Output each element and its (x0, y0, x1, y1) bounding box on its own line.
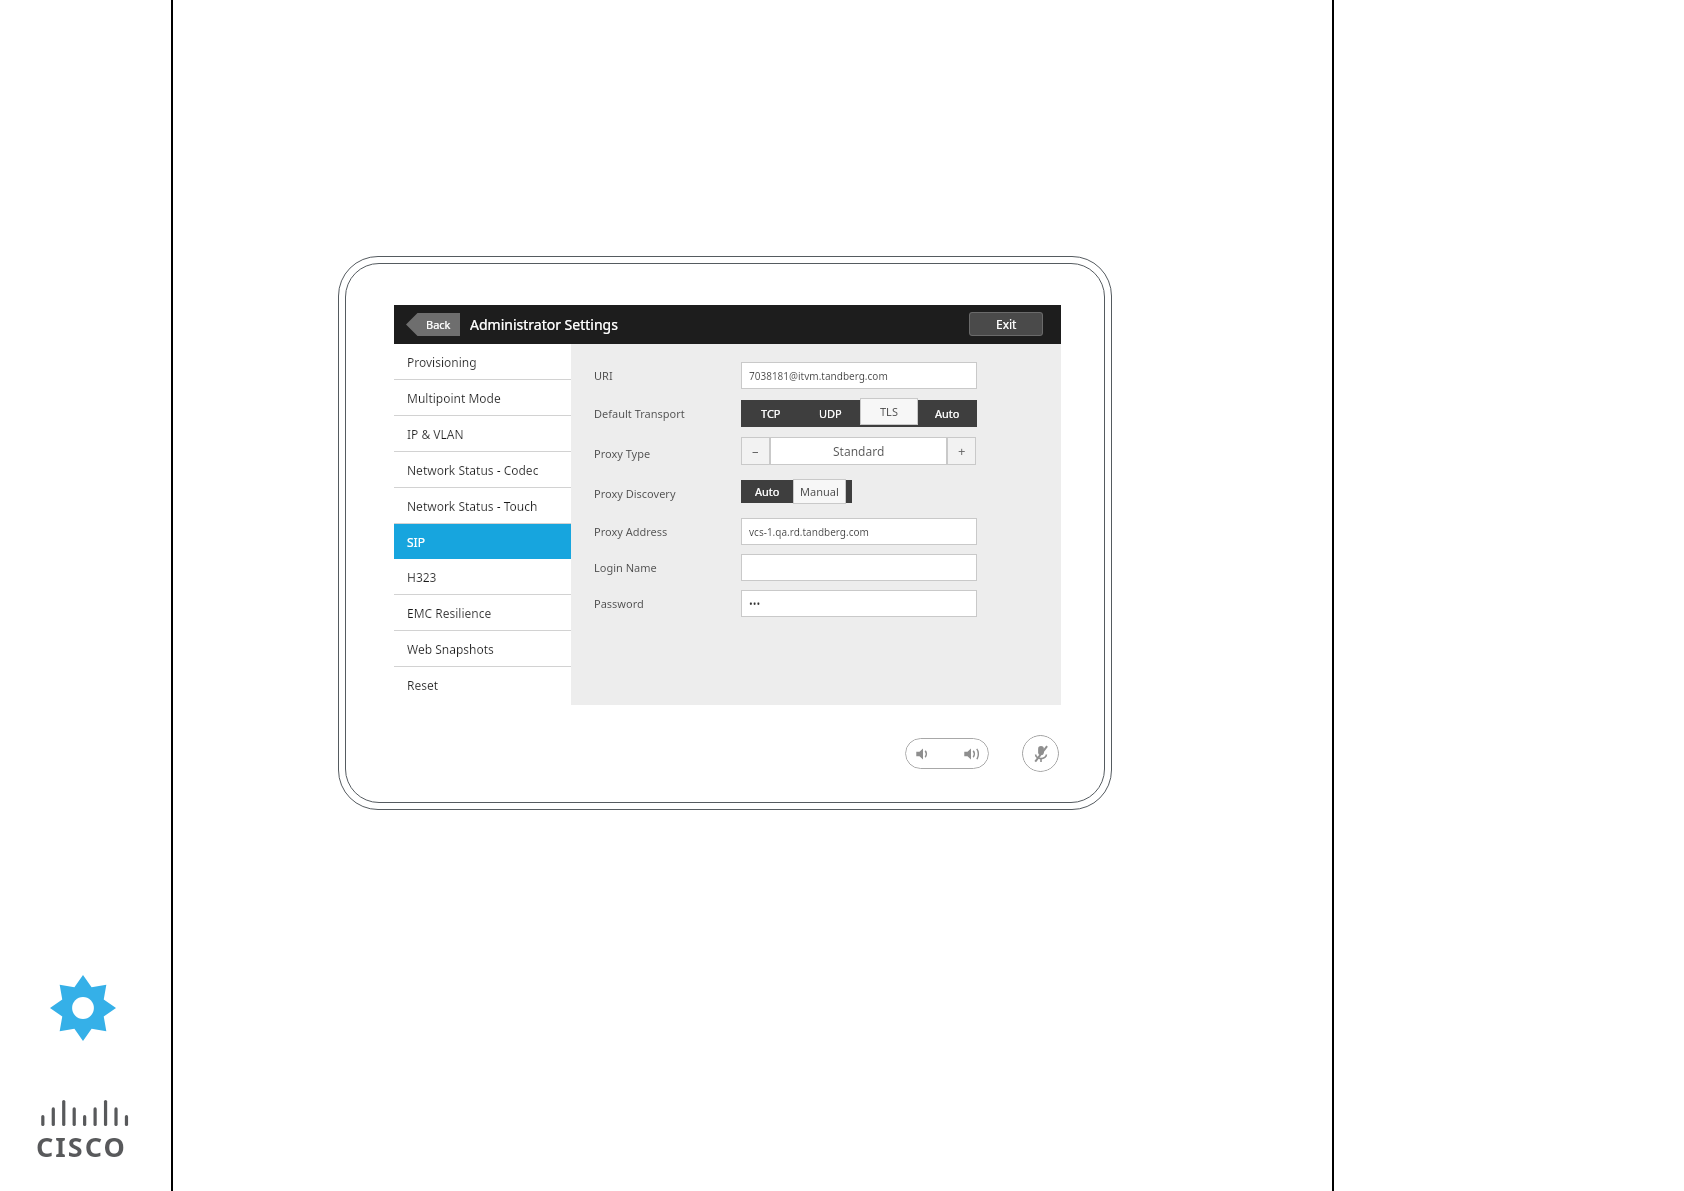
staticText: + (958, 442, 966, 460)
button[interactable]: Web Snapshots (394, 631, 571, 666)
staticText: 7038181@itvm.tandberg.com (749, 369, 888, 383)
button[interactable]: UDP (801, 400, 860, 427)
staticText: TCP (761, 406, 781, 421)
staticText: vcs-1.qa.rd.tandberg.com (749, 525, 869, 539)
staticText: Proxy Address (594, 524, 668, 539)
button[interactable]: TLS (860, 398, 918, 425)
button[interactable]: Multipoint Mode (394, 380, 571, 415)
staticText: H323 (407, 569, 437, 585)
button[interactable]: Exit (969, 312, 1043, 336)
button[interactable]: Network Status - Codec (394, 452, 571, 487)
staticText: Network Status - Codec (407, 462, 539, 478)
button[interactable]: Manual (793, 479, 846, 504)
staticText: – (752, 442, 759, 460)
button[interactable]: Mute microphone (1022, 735, 1059, 772)
staticText: TLS (880, 404, 898, 419)
staticText: Multipoint Mode (407, 390, 501, 406)
button[interactable]: Standard (770, 437, 947, 465)
button[interactable]: TCP (741, 400, 801, 427)
button[interactable]: Auto (741, 480, 793, 503)
staticText: Reset (407, 677, 439, 693)
button[interactable]: Reset (394, 667, 571, 702)
staticText: SIP (407, 534, 425, 550)
staticText: Back (426, 317, 451, 332)
button[interactable]: Provisioning (394, 344, 571, 379)
staticText: Standard (833, 443, 885, 459)
staticText: URI (594, 368, 613, 383)
staticText: Auto (935, 406, 960, 421)
button[interactable]: IP & VLAN (394, 416, 571, 451)
staticText: Exit (996, 316, 1017, 332)
button[interactable]: Volume down (915, 746, 931, 762)
staticText: IP & VLAN (407, 426, 464, 442)
button[interactable]: H323 (394, 559, 571, 594)
button[interactable]: Decrease (741, 437, 770, 465)
staticText: UDP (819, 406, 842, 421)
button[interactable]: Increase (947, 437, 976, 465)
staticText: Network Status - Touch (407, 498, 538, 514)
staticText: Manual (800, 484, 839, 499)
button[interactable]: SIP (394, 524, 571, 559)
staticText: Proxy Discovery (594, 486, 676, 501)
button[interactable]: ••• (741, 590, 977, 617)
staticText: Administrator Settings (470, 315, 618, 334)
staticText: Web Snapshots (407, 641, 494, 657)
button[interactable]: EMC Resilience (394, 595, 571, 630)
staticText: Login Name (594, 560, 657, 575)
staticText: Default Transport (594, 406, 685, 421)
button[interactable]: vcs-1.qa.rd.tandberg.com (741, 518, 977, 545)
button[interactable] (741, 554, 977, 581)
staticText: Proxy Type (594, 446, 651, 461)
staticText: Password (594, 596, 644, 611)
button[interactable]: 7038181@itvm.tandberg.com (741, 362, 977, 389)
button[interactable]: Network Status - Touch (394, 488, 571, 523)
button[interactable]: Auto (918, 400, 977, 427)
staticText: EMC Resilience (407, 605, 492, 621)
button[interactable]: Back (406, 313, 460, 336)
button[interactable]: Volume up (963, 746, 979, 762)
staticText: Provisioning (407, 354, 477, 370)
staticText: CISCO (36, 1128, 127, 1165)
staticText: ••• (749, 597, 761, 611)
staticText: Auto (755, 484, 780, 499)
